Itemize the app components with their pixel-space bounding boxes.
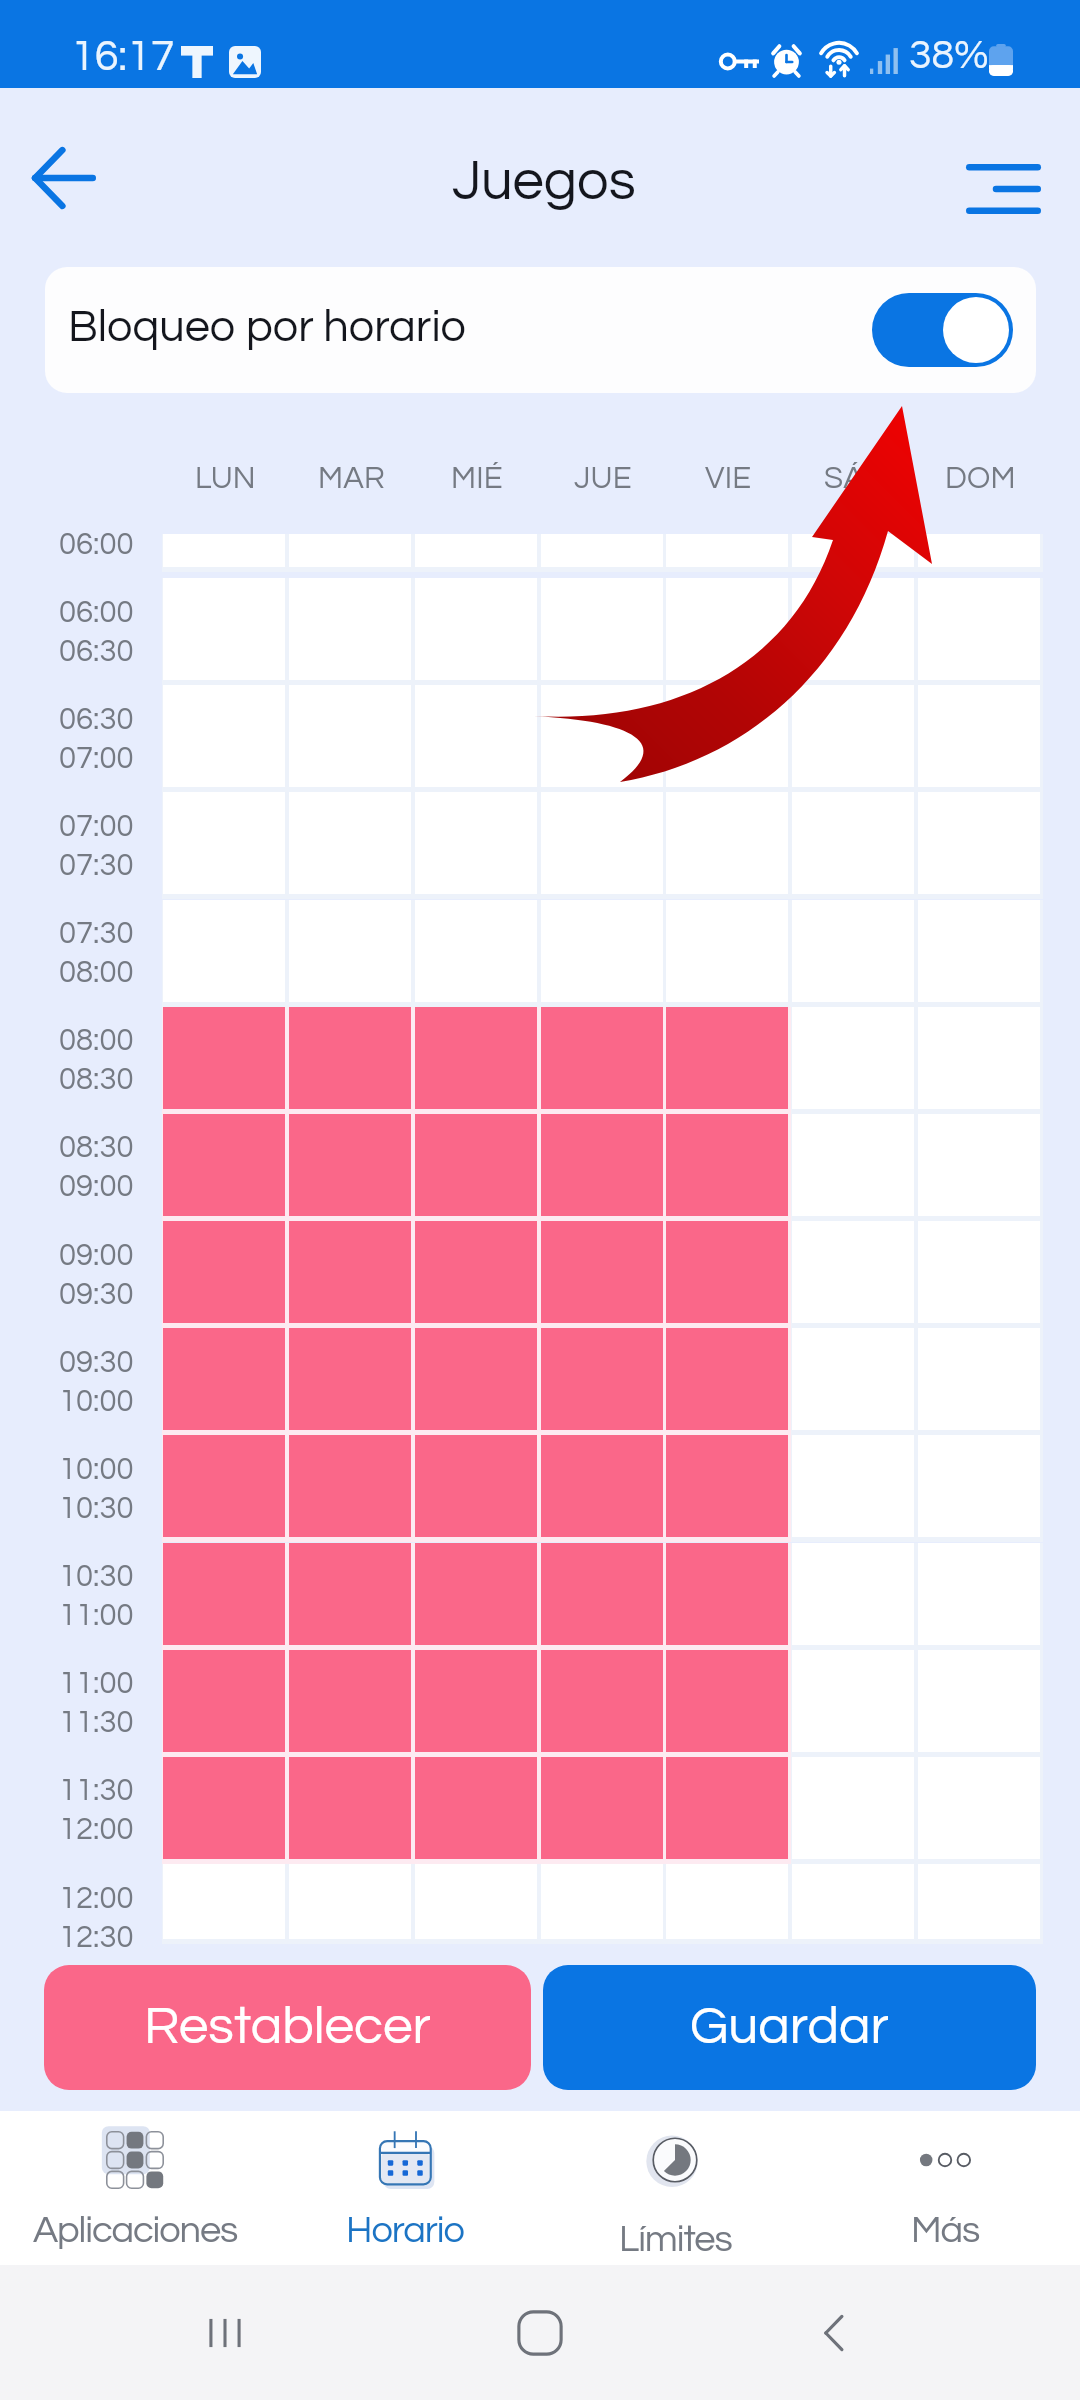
button[interactable] bbox=[792, 685, 914, 787]
button[interactable]: Home bbox=[495, 2288, 585, 2378]
button[interactable]: Back bbox=[17, 132, 109, 224]
button[interactable]: Bloqueo por horario activado bbox=[872, 293, 1013, 367]
button[interactable]: Límites bbox=[540, 2111, 810, 2265]
button[interactable] bbox=[918, 534, 1040, 567]
button[interactable]: Aplicaciones bbox=[0, 2111, 270, 2265]
button[interactable] bbox=[541, 685, 663, 787]
button[interactable]: Back bbox=[790, 2288, 880, 2378]
button[interactable] bbox=[792, 578, 914, 680]
button[interactable] bbox=[792, 534, 914, 567]
button[interactable]: Horario bbox=[270, 2111, 540, 2265]
button[interactable]: Menu bbox=[947, 150, 1060, 228]
button[interactable] bbox=[666, 685, 788, 787]
button[interactable]: Recents bbox=[180, 2288, 270, 2378]
button[interactable]: Más bbox=[810, 2111, 1080, 2265]
button[interactable]: Bloqueo por horario bbox=[45, 267, 1036, 393]
button[interactable]: Guardar bbox=[543, 1965, 1036, 2090]
